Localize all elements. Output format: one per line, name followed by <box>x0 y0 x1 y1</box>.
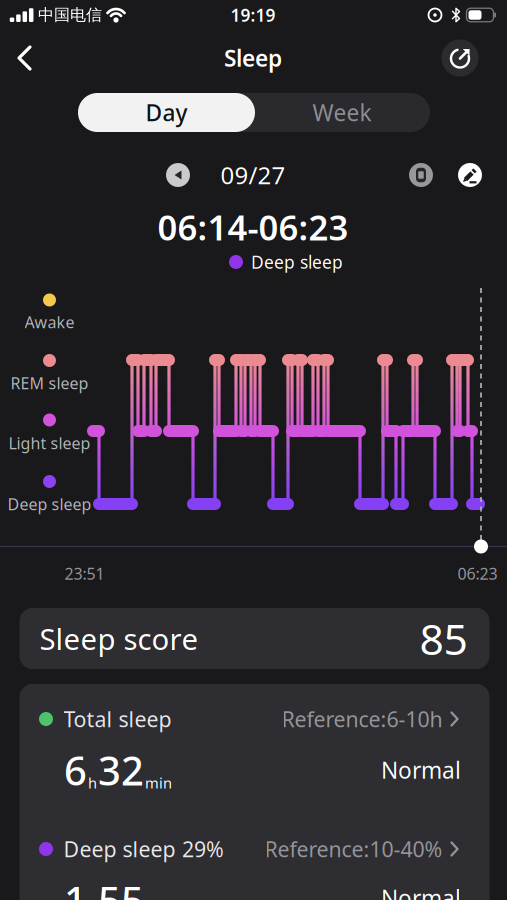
staticText: 55 <box>98 873 144 900</box>
staticText: h <box>88 773 97 793</box>
staticText: Reference:6-10h <box>281 705 442 733</box>
staticText: 23:51 <box>64 563 104 584</box>
staticText: Deep sleep <box>7 493 91 515</box>
staticText: Normal <box>381 883 461 900</box>
staticText: 06:14-06:23 <box>157 204 348 250</box>
button[interactable]: Refresh <box>441 39 478 76</box>
staticText: 1 <box>64 873 87 900</box>
staticText: Awake <box>24 311 74 333</box>
staticText: 29% <box>182 835 224 863</box>
staticText: Day <box>145 97 187 127</box>
staticText: Deep sleep <box>63 835 175 863</box>
button[interactable]: Sleep score <box>19 608 489 669</box>
staticText: Sleep <box>224 43 282 73</box>
staticText: Sleep score <box>39 619 198 658</box>
staticText: Week <box>312 97 371 127</box>
button[interactable]: Reference:10-40% <box>200 835 460 863</box>
staticText: Light sleep <box>8 432 90 454</box>
button[interactable]: Watch <box>409 163 433 187</box>
staticText: 06:23 <box>457 563 497 584</box>
button[interactable]: Week <box>254 93 429 132</box>
staticText: Normal <box>381 755 461 785</box>
staticText: 19:19 <box>230 3 275 26</box>
staticText: 09/27 <box>220 159 285 191</box>
staticText: 中国电信 <box>38 5 102 25</box>
staticText: min <box>145 773 172 793</box>
button[interactable]: Day <box>78 93 255 132</box>
staticText: 6 <box>64 743 87 796</box>
staticText: 85 <box>419 610 467 667</box>
staticText: Reference:10-40% <box>264 835 442 863</box>
button[interactable]: Reference:6-10h <box>200 705 460 733</box>
staticText: 32 <box>98 743 144 796</box>
button[interactable]: Back <box>3 36 47 80</box>
button[interactable]: Previous day <box>166 163 190 187</box>
staticText: Deep sleep <box>251 250 343 273</box>
button[interactable]: Edit <box>458 163 482 187</box>
staticText: Total sleep <box>63 705 171 733</box>
staticText: REM sleep <box>10 372 88 394</box>
